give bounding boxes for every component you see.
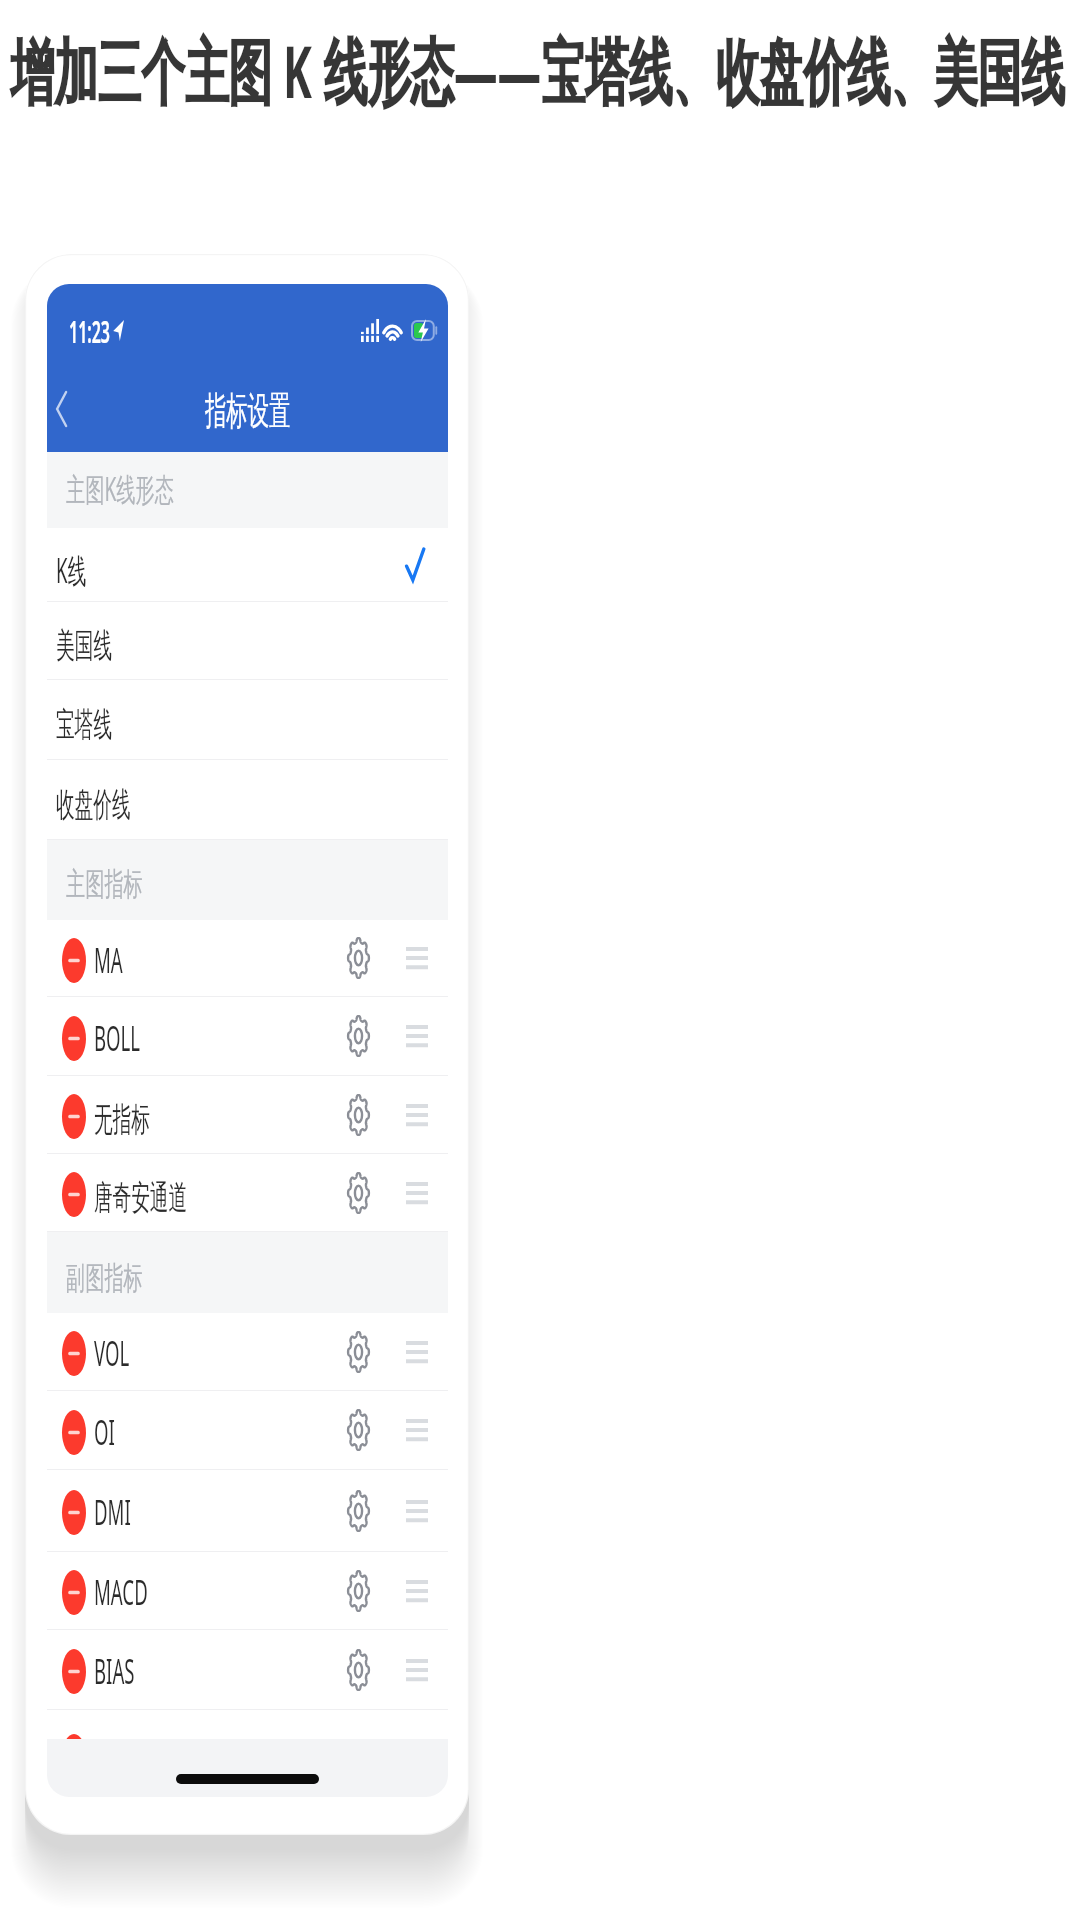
button[interactable]: Remove OI xyxy=(62,1410,86,1455)
staticText: VOL xyxy=(94,1330,130,1375)
button[interactable]: Reorder 无指标 xyxy=(396,1094,438,1136)
button[interactable]: Reorder MACD xyxy=(396,1570,438,1612)
button[interactable]: 收盘价线 xyxy=(47,760,448,839)
staticText: OI xyxy=(94,1409,115,1454)
button[interactable]: 宝塔线 xyxy=(47,680,448,759)
staticText: MACD xyxy=(94,1569,148,1614)
button[interactable]: Settings for MA xyxy=(335,932,381,984)
staticText: 美国线 xyxy=(56,625,112,666)
button[interactable]: Settings for BIAS xyxy=(335,1644,381,1696)
button[interactable]: Reorder VOL xyxy=(396,1331,438,1373)
button[interactable]: Settings for DMI xyxy=(335,1485,381,1537)
button[interactable]: Remove 唐奇安通道 xyxy=(62,1172,86,1217)
button[interactable]: Remove MACD xyxy=(47,1552,448,1629)
button[interactable]: Remove BOLL xyxy=(47,997,448,1075)
button[interactable]: 美国线 xyxy=(47,602,448,679)
button[interactable]: Remove MA xyxy=(47,920,448,996)
staticText: 11:23 xyxy=(69,311,111,352)
staticText: 增加三个主图 K 线形态——宝塔线、收盘价线、美国线 xyxy=(10,20,1065,120)
staticText: 主图K线形态 xyxy=(66,466,174,510)
staticText: BIAS xyxy=(94,1648,135,1693)
button[interactable]: Settings for BOLL xyxy=(335,1010,381,1062)
button[interactable]: Settings for VOL xyxy=(335,1326,381,1378)
staticText: 主图指标 xyxy=(66,865,143,905)
staticText: DMI xyxy=(94,1489,131,1534)
staticText: 收盘价线 xyxy=(56,784,131,825)
staticText: 宝塔线 xyxy=(56,704,112,745)
button[interactable]: Remove 无指标 xyxy=(47,1076,448,1153)
button[interactable]: Remove OI xyxy=(47,1391,448,1469)
button[interactable]: Remove MACD xyxy=(62,1570,86,1615)
button[interactable]: K线 xyxy=(47,528,448,601)
staticText: 指标设置 xyxy=(205,386,291,435)
button[interactable]: Settings for 唐奇安通道 xyxy=(335,1167,381,1219)
staticText: K线 xyxy=(56,547,87,592)
button[interactable]: Remove 无指标 xyxy=(62,1094,86,1139)
button[interactable]: Back xyxy=(47,376,77,442)
button[interactable]: Settings for OI xyxy=(335,1404,381,1456)
button[interactable]: Reorder 唐奇安通道 xyxy=(396,1172,438,1214)
button[interactable]: Reorder OI xyxy=(396,1409,438,1451)
button[interactable]: Remove VOL xyxy=(47,1313,448,1390)
staticText: MA xyxy=(94,937,123,982)
staticText: BOLL xyxy=(94,1015,141,1060)
button[interactable]: Settings for 无指标 xyxy=(335,1089,381,1141)
button[interactable]: Remove BIAS xyxy=(62,1649,86,1694)
button[interactable]: Remove DMI xyxy=(47,1470,448,1551)
button[interactable]: Reorder BIAS xyxy=(396,1649,438,1691)
button[interactable]: Remove BIAS xyxy=(47,1630,448,1709)
staticText: 唐奇安通道 xyxy=(94,1177,187,1218)
button[interactable]: Reorder MA xyxy=(396,937,438,979)
button[interactable]: Settings for MACD xyxy=(335,1565,381,1617)
button[interactable]: Remove BOLL xyxy=(62,1016,86,1061)
button[interactable]: Remove MA xyxy=(62,938,86,983)
staticText: 无指标 xyxy=(94,1099,150,1140)
staticText: 副图指标 xyxy=(66,1259,143,1299)
button[interactable]: Reorder DMI xyxy=(396,1490,438,1532)
button[interactable]: Remove DMI xyxy=(62,1490,86,1535)
button[interactable]: Remove VOL xyxy=(62,1331,86,1376)
button[interactable]: Reorder BOLL xyxy=(396,1015,438,1057)
button[interactable]: Remove 唐奇安通道 xyxy=(47,1154,448,1231)
